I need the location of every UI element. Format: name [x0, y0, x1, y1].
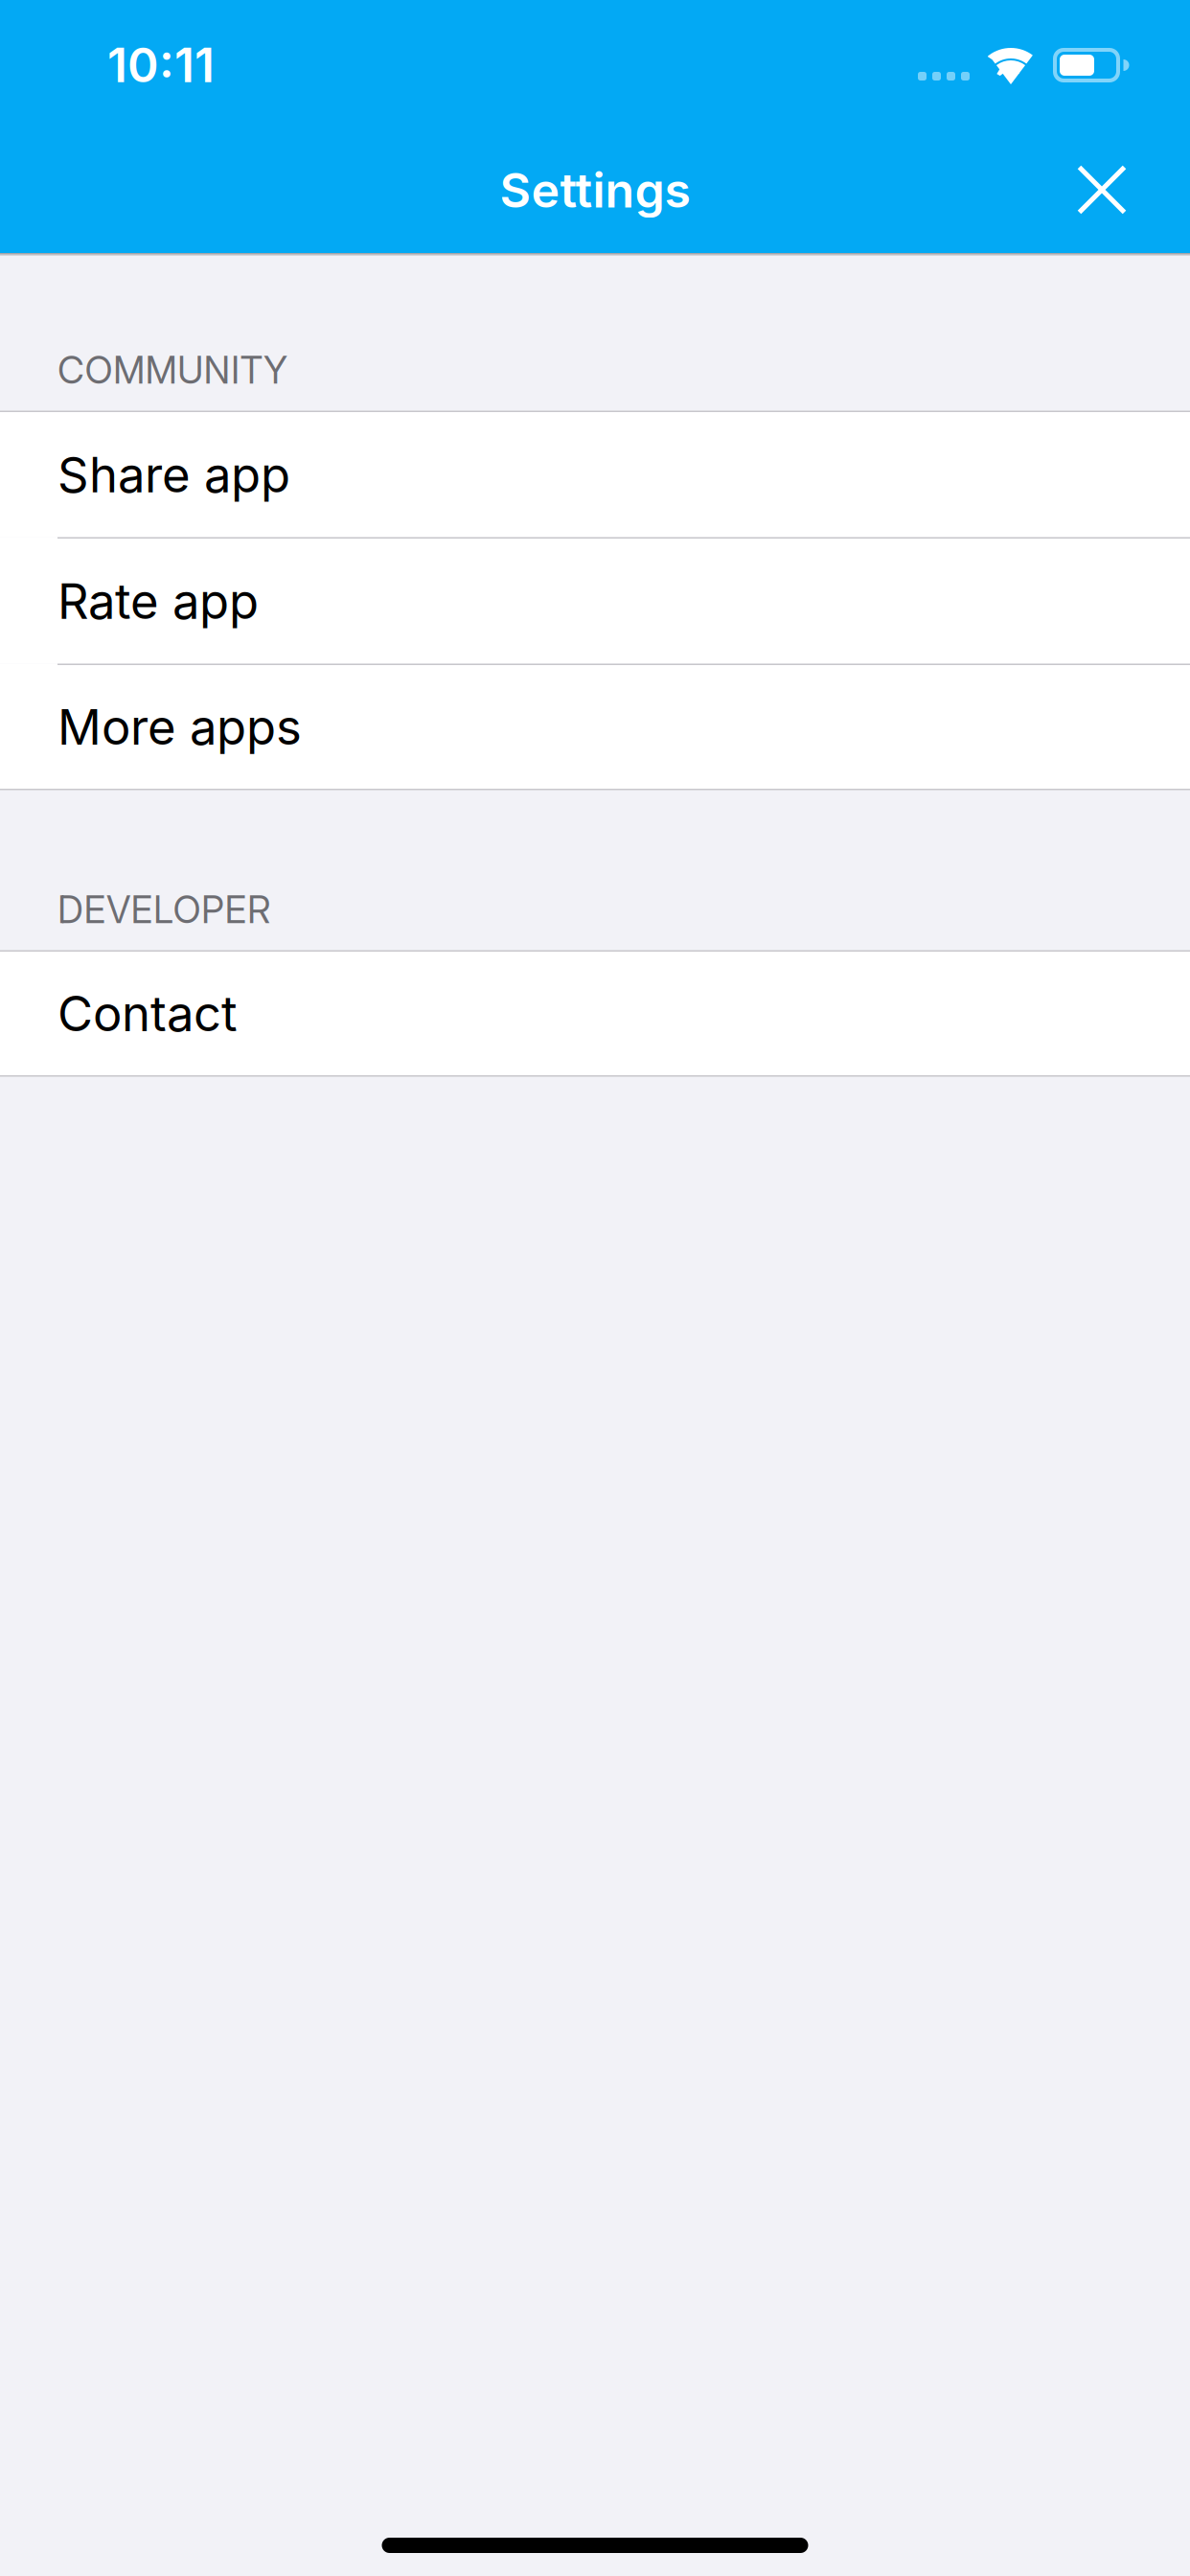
- button[interactable]: Rate app: [0, 539, 1190, 664]
- staticText: More apps: [57, 697, 302, 756]
- staticText: Rate app: [57, 572, 259, 630]
- staticText: Contact: [57, 984, 238, 1043]
- staticText: DEVELOPER: [57, 887, 271, 932]
- button[interactable]: More apps: [0, 665, 1190, 789]
- staticText: Share app: [57, 445, 290, 504]
- staticText: COMMUNITY: [57, 348, 287, 392]
- staticText: 10:11: [107, 36, 215, 94]
- button[interactable]: Contact: [0, 952, 1190, 1075]
- button[interactable]: Close: [1056, 144, 1148, 236]
- staticText: Settings: [500, 161, 690, 219]
- button[interactable]: Share app: [0, 412, 1190, 537]
